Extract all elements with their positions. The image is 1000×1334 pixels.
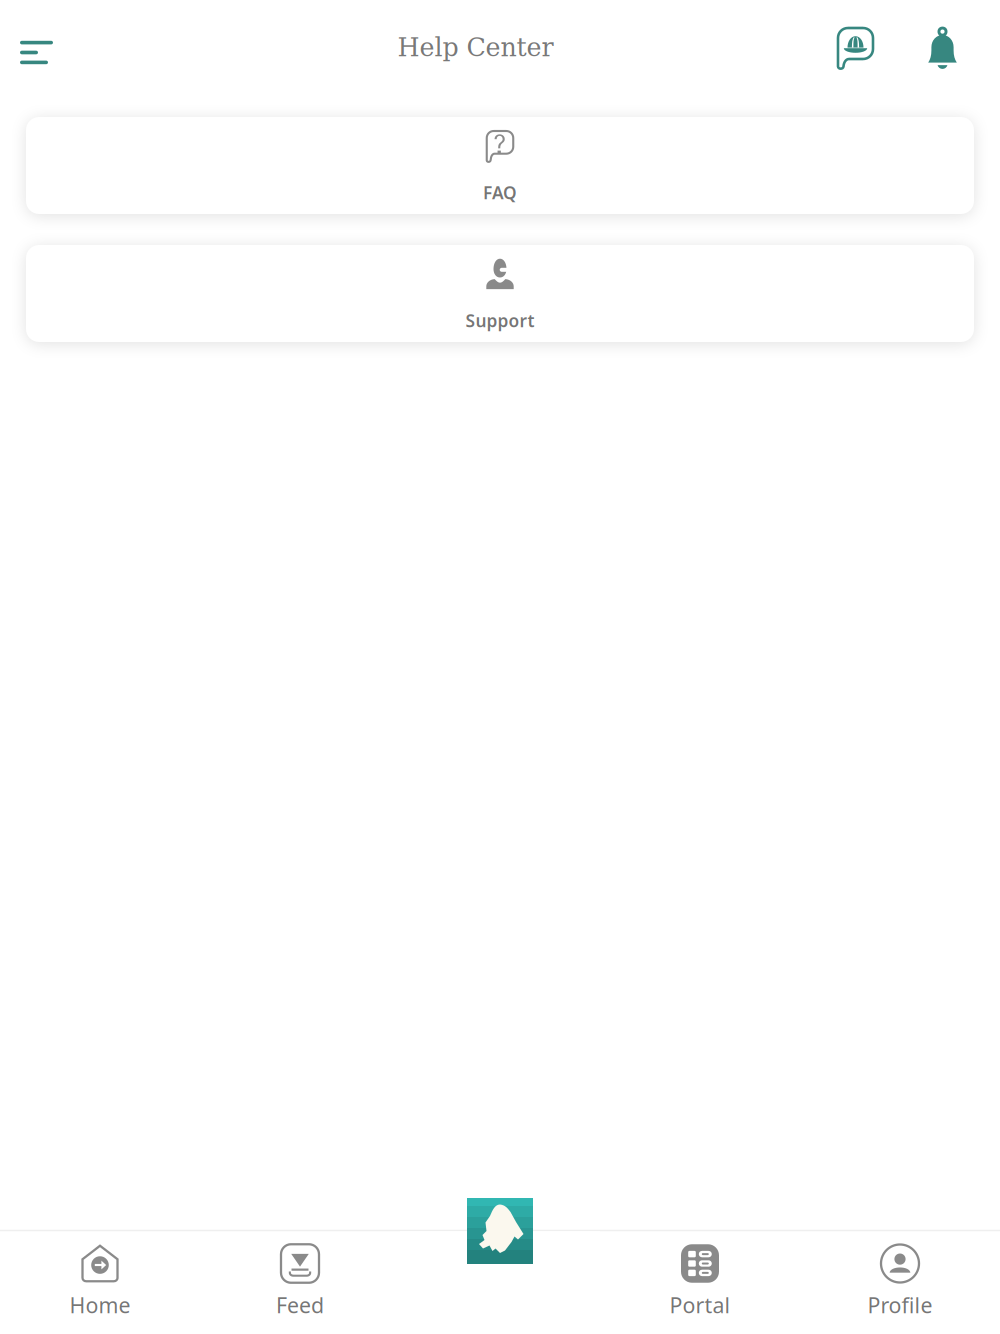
button[interactable]: Profile (800, 1231, 1000, 1334)
button[interactable]: FAQ (26, 117, 974, 214)
staticText: Feed (276, 1291, 324, 1319)
staticText: Profile (867, 1291, 932, 1319)
button[interactable]: Support (26, 245, 974, 342)
button[interactable]: Messages (810, 0, 901, 95)
button[interactable]: Feed (200, 1231, 400, 1334)
staticText: Portal (669, 1291, 730, 1319)
button[interactable]: Portal (600, 1231, 800, 1334)
staticText: Home (69, 1291, 130, 1319)
button[interactable]: Home (467, 1198, 533, 1264)
staticText: FAQ (483, 181, 517, 204)
staticText: Help Center (397, 33, 553, 62)
button[interactable]: Home (0, 1231, 200, 1334)
staticText: Support (465, 309, 534, 332)
button[interactable]: Menu (0, 0, 85, 95)
button[interactable]: Notifications (901, 0, 1000, 95)
